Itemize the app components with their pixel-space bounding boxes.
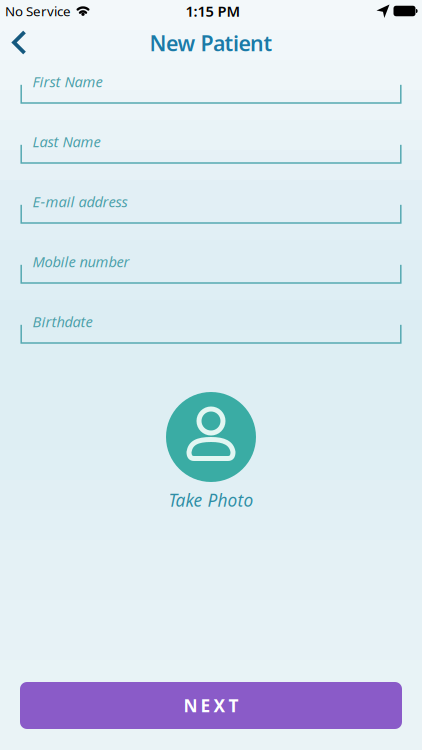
button[interactable]: Take Photo xyxy=(146,387,276,537)
button[interactable]: First Name xyxy=(20,71,402,103)
staticText: First Name xyxy=(32,72,102,91)
staticText: New Patient xyxy=(149,29,272,57)
button[interactable]: Last Name xyxy=(20,131,402,163)
staticText: 1:15 PM xyxy=(185,1,240,21)
button[interactable]: E-mail address xyxy=(20,191,402,223)
staticText: Last Name xyxy=(32,132,100,151)
staticText: Take Photo xyxy=(168,488,253,511)
button[interactable]: Mobile number xyxy=(20,251,402,283)
button[interactable]: Back xyxy=(0,21,40,65)
button[interactable]: Birthdate xyxy=(20,311,402,343)
staticText: Mobile number xyxy=(32,252,129,271)
staticText: N E X T xyxy=(183,694,238,717)
staticText: E-mail address xyxy=(32,192,127,211)
staticText: Birthdate xyxy=(32,312,92,331)
staticText: No Service xyxy=(5,2,71,20)
button[interactable]: N E X T xyxy=(20,682,402,729)
